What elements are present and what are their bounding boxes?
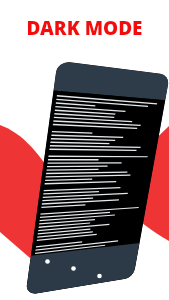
staticText: DARK MODE: [0, 15, 169, 41]
